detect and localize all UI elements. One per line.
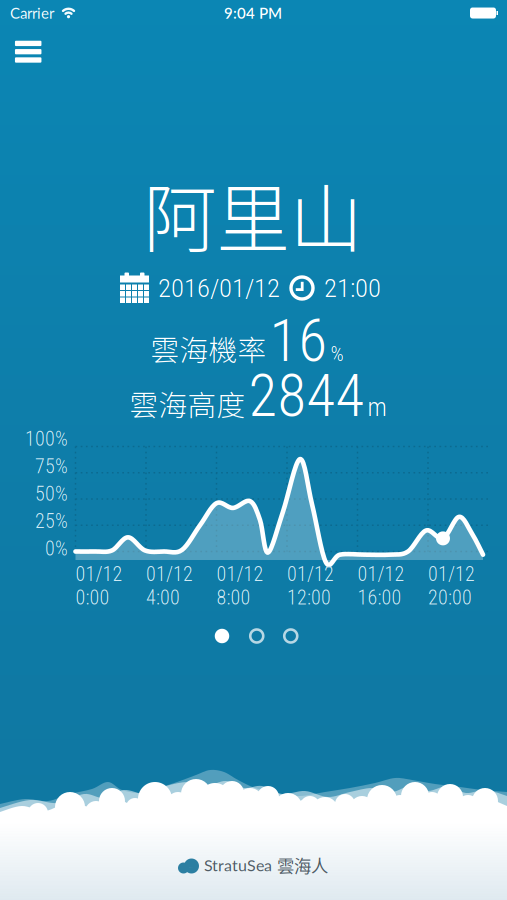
staticText: 21:00 — [324, 272, 381, 304]
staticText: 20:00 — [428, 586, 472, 609]
staticText: Carrier — [10, 4, 54, 22]
staticText: 01/12 — [75, 563, 122, 586]
staticText: 50% — [35, 482, 68, 505]
staticText: 雲海人 — [277, 852, 328, 878]
staticText: 阿里山 — [143, 161, 362, 267]
staticText: % — [330, 342, 343, 366]
staticText: 25% — [35, 509, 68, 533]
staticText: 0:00 — [75, 586, 109, 609]
staticText: 0% — [45, 537, 68, 560]
staticText: 01/12 — [146, 563, 193, 586]
staticText: 75% — [35, 455, 68, 478]
staticText: 16 — [269, 307, 327, 375]
staticText: 2016/01/12 — [158, 272, 280, 304]
staticText: 4:00 — [146, 586, 180, 609]
staticText: 12:00 — [287, 586, 331, 609]
staticText: 01/12 — [287, 563, 334, 586]
button[interactable] — [7, 33, 49, 71]
staticText: 16:00 — [357, 586, 401, 609]
staticText: 01/12 — [428, 563, 475, 586]
button[interactable] — [209, 623, 303, 649]
staticText: StratuSea — [204, 855, 272, 875]
staticText: 雲海高度 — [129, 383, 245, 424]
staticText: 100% — [25, 427, 68, 451]
staticText: 01/12 — [216, 563, 263, 586]
staticText: 01/12 — [357, 563, 404, 586]
staticText: 9:04 PM — [224, 4, 282, 22]
staticText: 8:00 — [216, 586, 250, 609]
staticText: 雲海機率 — [150, 328, 266, 369]
staticText: 2844 — [248, 362, 364, 430]
staticText: m — [367, 393, 386, 422]
